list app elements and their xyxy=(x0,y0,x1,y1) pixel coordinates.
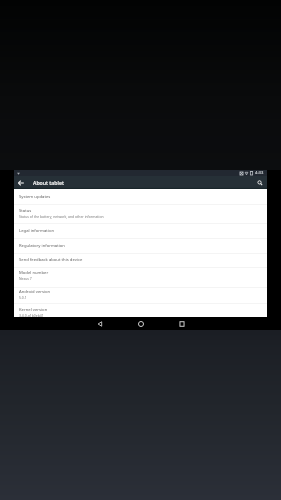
button[interactable]: Legal information xyxy=(14,223,267,238)
staticText: Send feedback about this device xyxy=(19,257,83,263)
button[interactable]: System updates xyxy=(14,189,267,204)
staticText: About tablet xyxy=(33,179,64,186)
staticText: Model number xyxy=(19,270,49,276)
staticText: Status xyxy=(19,208,32,214)
staticText: 3.4.0-g1b0eb41 xyxy=(19,313,44,318)
staticText: System updates xyxy=(19,194,51,200)
button[interactable]: Android version xyxy=(14,287,267,306)
staticText: Android version xyxy=(19,289,51,295)
button[interactable]: Model number xyxy=(14,267,267,287)
button[interactable]: Search xyxy=(253,176,267,189)
button[interactable]: Back xyxy=(90,317,110,330)
staticText: 4:33 xyxy=(255,170,264,176)
staticText: 5.0.1 xyxy=(19,295,27,300)
button[interactable]: Status xyxy=(14,204,267,223)
button[interactable]: Recent apps xyxy=(172,317,192,330)
button[interactable]: Regulatory information xyxy=(14,238,267,253)
button[interactable]: Kernel version xyxy=(14,303,267,321)
button[interactable]: Send feedback about this device xyxy=(14,253,267,267)
button[interactable]: Home xyxy=(131,317,151,330)
staticText: Regulatory information xyxy=(19,243,65,249)
staticText: Status of the battery, network, and othe… xyxy=(19,214,104,219)
staticText: Legal information xyxy=(19,228,54,234)
staticText: Nexus 7 xyxy=(19,276,32,281)
button[interactable]: Back xyxy=(14,176,27,189)
staticText: Kernel version xyxy=(19,307,48,313)
